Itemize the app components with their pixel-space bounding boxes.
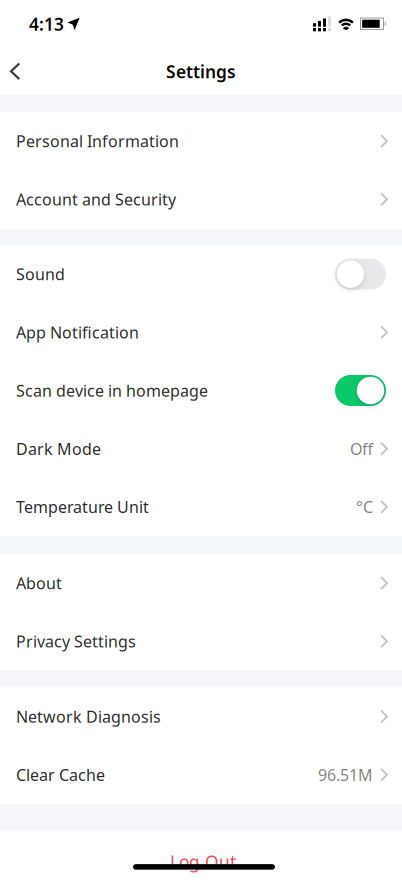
- staticText: 96.51M: [318, 764, 373, 785]
- button[interactable]: Network Diagnosis: [0, 687, 402, 746]
- staticText: Privacy Settings: [16, 631, 136, 652]
- button[interactable]: Off: [335, 259, 386, 290]
- staticText: Off: [350, 438, 373, 459]
- staticText: Dark Mode: [16, 438, 101, 459]
- button[interactable]: Dark Mode: [0, 420, 402, 478]
- button[interactable]: Back: [0, 50, 21, 92]
- staticText: 4:13: [29, 12, 64, 35]
- staticText: Account and Security: [16, 189, 176, 210]
- staticText: Settings: [166, 60, 236, 83]
- button[interactable]: Privacy Settings: [0, 612, 402, 670]
- button[interactable]: Account and Security: [0, 170, 402, 228]
- staticText: About: [16, 572, 62, 594]
- button[interactable]: Scan device in homepage: [0, 361, 402, 420]
- staticText: App Notification: [16, 322, 139, 343]
- button[interactable]: App Notification: [0, 303, 402, 361]
- button[interactable]: Clear Cache: [0, 746, 402, 804]
- button[interactable]: On: [335, 375, 386, 406]
- button[interactable]: About: [0, 554, 402, 612]
- staticText: Temperature Unit: [16, 496, 149, 517]
- button[interactable]: Log Out: [170, 849, 236, 875]
- staticText: Clear Cache: [16, 764, 105, 785]
- button[interactable]: Personal Information: [0, 112, 402, 170]
- staticText: °C: [356, 496, 373, 517]
- staticText: Network Diagnosis: [16, 706, 161, 727]
- staticText: Personal Information: [16, 130, 179, 152]
- button[interactable]: Sound: [0, 245, 402, 303]
- staticText: Log Out: [170, 850, 236, 873]
- staticText: Scan device in homepage: [16, 380, 208, 401]
- staticText: Sound: [16, 263, 65, 285]
- button[interactable]: Temperature Unit: [0, 478, 402, 536]
